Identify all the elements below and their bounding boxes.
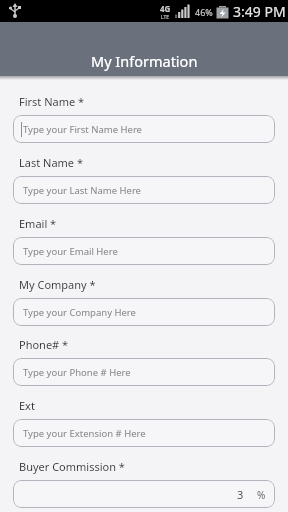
staticText: Type your Email Here bbox=[23, 245, 118, 258]
staticText: Type your Phone # Here bbox=[23, 366, 131, 379]
staticText: LTE bbox=[161, 14, 170, 21]
staticText: % bbox=[257, 488, 266, 502]
staticText: Ext bbox=[19, 398, 35, 413]
staticText: Type your Last Name Here bbox=[23, 184, 141, 197]
staticText: 46% bbox=[195, 6, 213, 18]
staticText: 3:49 PM bbox=[233, 2, 286, 21]
button[interactable]: 3 bbox=[13, 480, 275, 508]
staticText: Phone# * bbox=[19, 337, 69, 352]
button[interactable]: Type your Phone # Here bbox=[13, 358, 275, 386]
staticText: My Company * bbox=[19, 277, 96, 292]
staticText: Type your Company Here bbox=[23, 306, 136, 319]
staticText: 3 bbox=[237, 487, 244, 502]
button[interactable]: Type your First Name Here bbox=[13, 115, 275, 143]
staticText: My Information bbox=[91, 51, 198, 71]
staticText: First Name * bbox=[19, 94, 85, 109]
staticText: Buyer Commission * bbox=[19, 459, 125, 474]
staticText: Email * bbox=[19, 216, 57, 231]
button[interactable]: Type your Email Here bbox=[13, 237, 275, 265]
staticText: Type your Extension # Here bbox=[23, 427, 146, 440]
staticText: Last Name * bbox=[19, 155, 83, 170]
button[interactable]: Type your Company Here bbox=[13, 298, 275, 326]
button[interactable]: Type your Last Name Here bbox=[13, 176, 275, 204]
staticText: Type your First Name Here bbox=[23, 123, 142, 136]
button[interactable]: Type your Extension # Here bbox=[13, 419, 275, 447]
staticText: 4G bbox=[160, 3, 171, 14]
